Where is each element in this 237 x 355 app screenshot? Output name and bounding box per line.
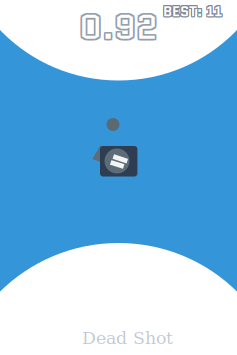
staticText: 0.92	[80, 0, 159, 50]
staticText: 0.92	[79, 0, 158, 50]
staticText: Dead Shot	[82, 328, 173, 348]
staticText: 0.92	[77, 0, 156, 50]
staticText: BEST: 11	[162, 1, 221, 21]
staticText: 0.92	[80, 3, 159, 53]
staticText: BEST: 11	[163, 1, 222, 21]
staticText: BEST: 11	[164, 1, 223, 21]
staticText: 0.92	[77, 3, 156, 53]
staticText: 0.92	[77, 2, 156, 52]
staticText: 0.92	[80, 2, 159, 52]
staticText: BEST: 11	[162, 0, 221, 20]
staticText: 0.92	[79, 2, 158, 52]
staticText: BEST: 11	[163, 2, 222, 22]
staticText: 0.92	[79, 3, 158, 53]
staticText: BEST: 11	[163, 0, 222, 20]
staticText: BEST: 11	[164, 0, 223, 20]
staticText: BEST: 11	[164, 2, 223, 22]
staticText: BEST: 11	[162, 2, 221, 22]
